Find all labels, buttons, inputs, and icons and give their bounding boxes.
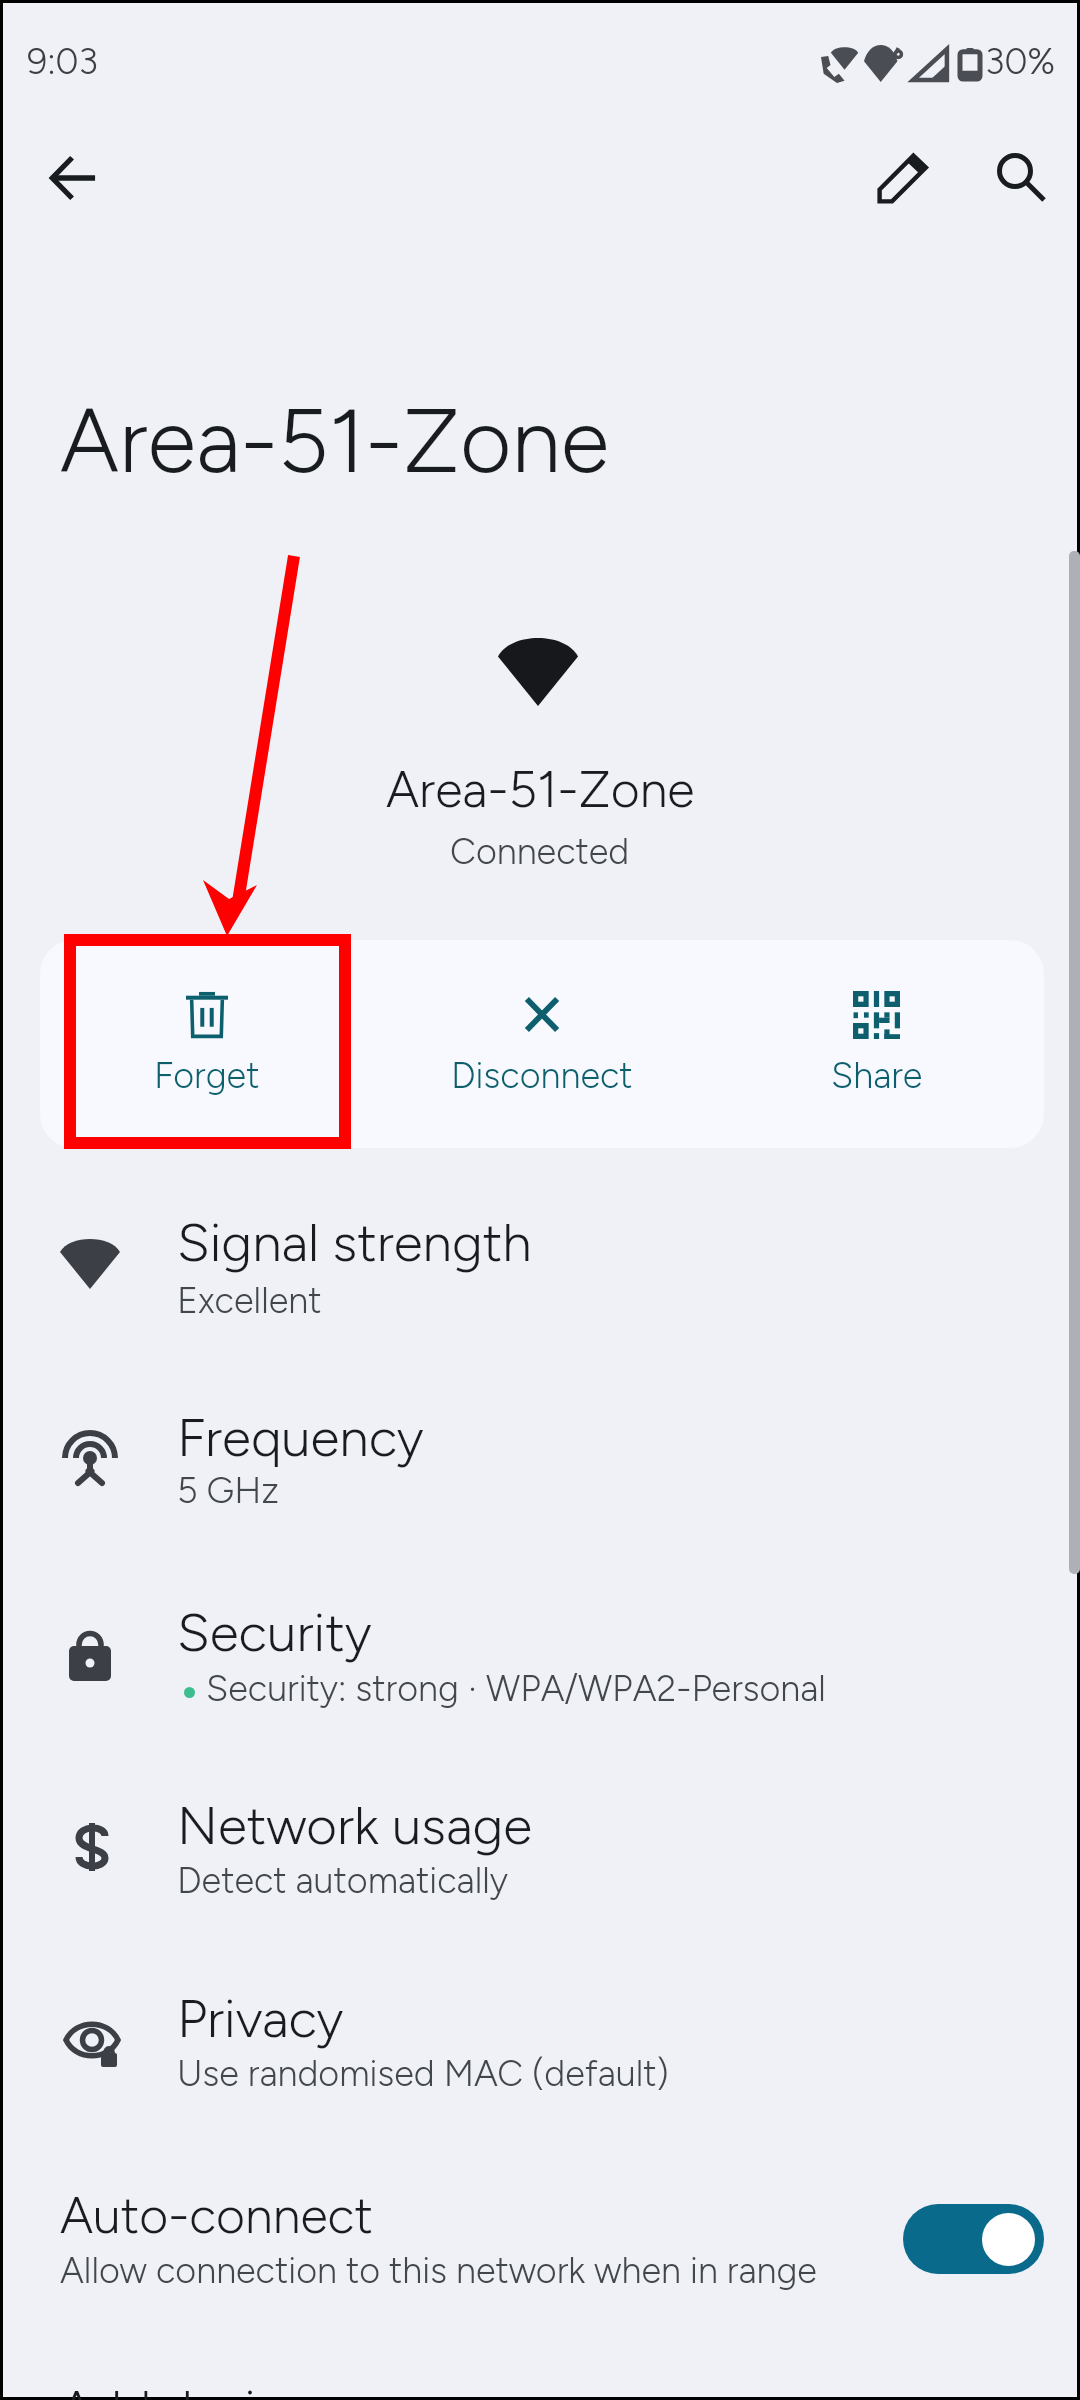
staticText: 5 GHz xyxy=(177,1469,280,1512)
button[interactable]: Privacy xyxy=(3,1963,1077,2123)
button[interactable]: Back xyxy=(25,130,121,226)
staticText: Detect automatically xyxy=(177,1859,509,1902)
staticText: Use randomised MAC (default) xyxy=(177,2052,669,2095)
staticText: Allow connection to this network when in… xyxy=(60,2249,817,2292)
button[interactable]: Search xyxy=(973,130,1069,226)
staticText: 9:03 xyxy=(27,40,98,83)
button[interactable]: Signal strength xyxy=(3,1187,1077,1347)
button[interactable]: Forget xyxy=(40,940,374,1148)
staticText: Network usage xyxy=(177,1794,533,1858)
button[interactable]: Auto-connect xyxy=(3,2153,1077,2339)
button[interactable]: Add device xyxy=(3,2343,1077,2400)
button[interactable]: Frequency xyxy=(3,1382,1077,1542)
staticText: Area-51-Zone xyxy=(60,387,610,494)
staticText: Add device xyxy=(60,2379,310,2400)
button[interactable]: Disconnect xyxy=(374,940,709,1148)
staticText: Signal strength xyxy=(177,1211,532,1275)
staticText: Area-51-Zone xyxy=(386,759,695,819)
staticText: Privacy xyxy=(177,1987,344,2051)
staticText: Security: strong · WPA/WPA2-Personal xyxy=(206,1667,826,1710)
staticText: Connected xyxy=(450,830,630,873)
staticText: Security xyxy=(177,1601,372,1665)
staticText: Frequency xyxy=(177,1406,424,1470)
button[interactable]: Share xyxy=(709,940,1044,1148)
button[interactable]: Security xyxy=(3,1577,1077,1737)
staticText: Excellent xyxy=(177,1279,322,1322)
staticText: Share xyxy=(831,1054,923,1097)
staticText: Auto-connect xyxy=(60,2185,373,2245)
button[interactable]: Edit network name xyxy=(855,130,951,226)
staticText: Forget xyxy=(154,1054,260,1097)
staticText: 30% xyxy=(985,40,1056,83)
button[interactable]: Network usage xyxy=(3,1770,1077,1930)
staticText: Disconnect xyxy=(451,1054,633,1097)
